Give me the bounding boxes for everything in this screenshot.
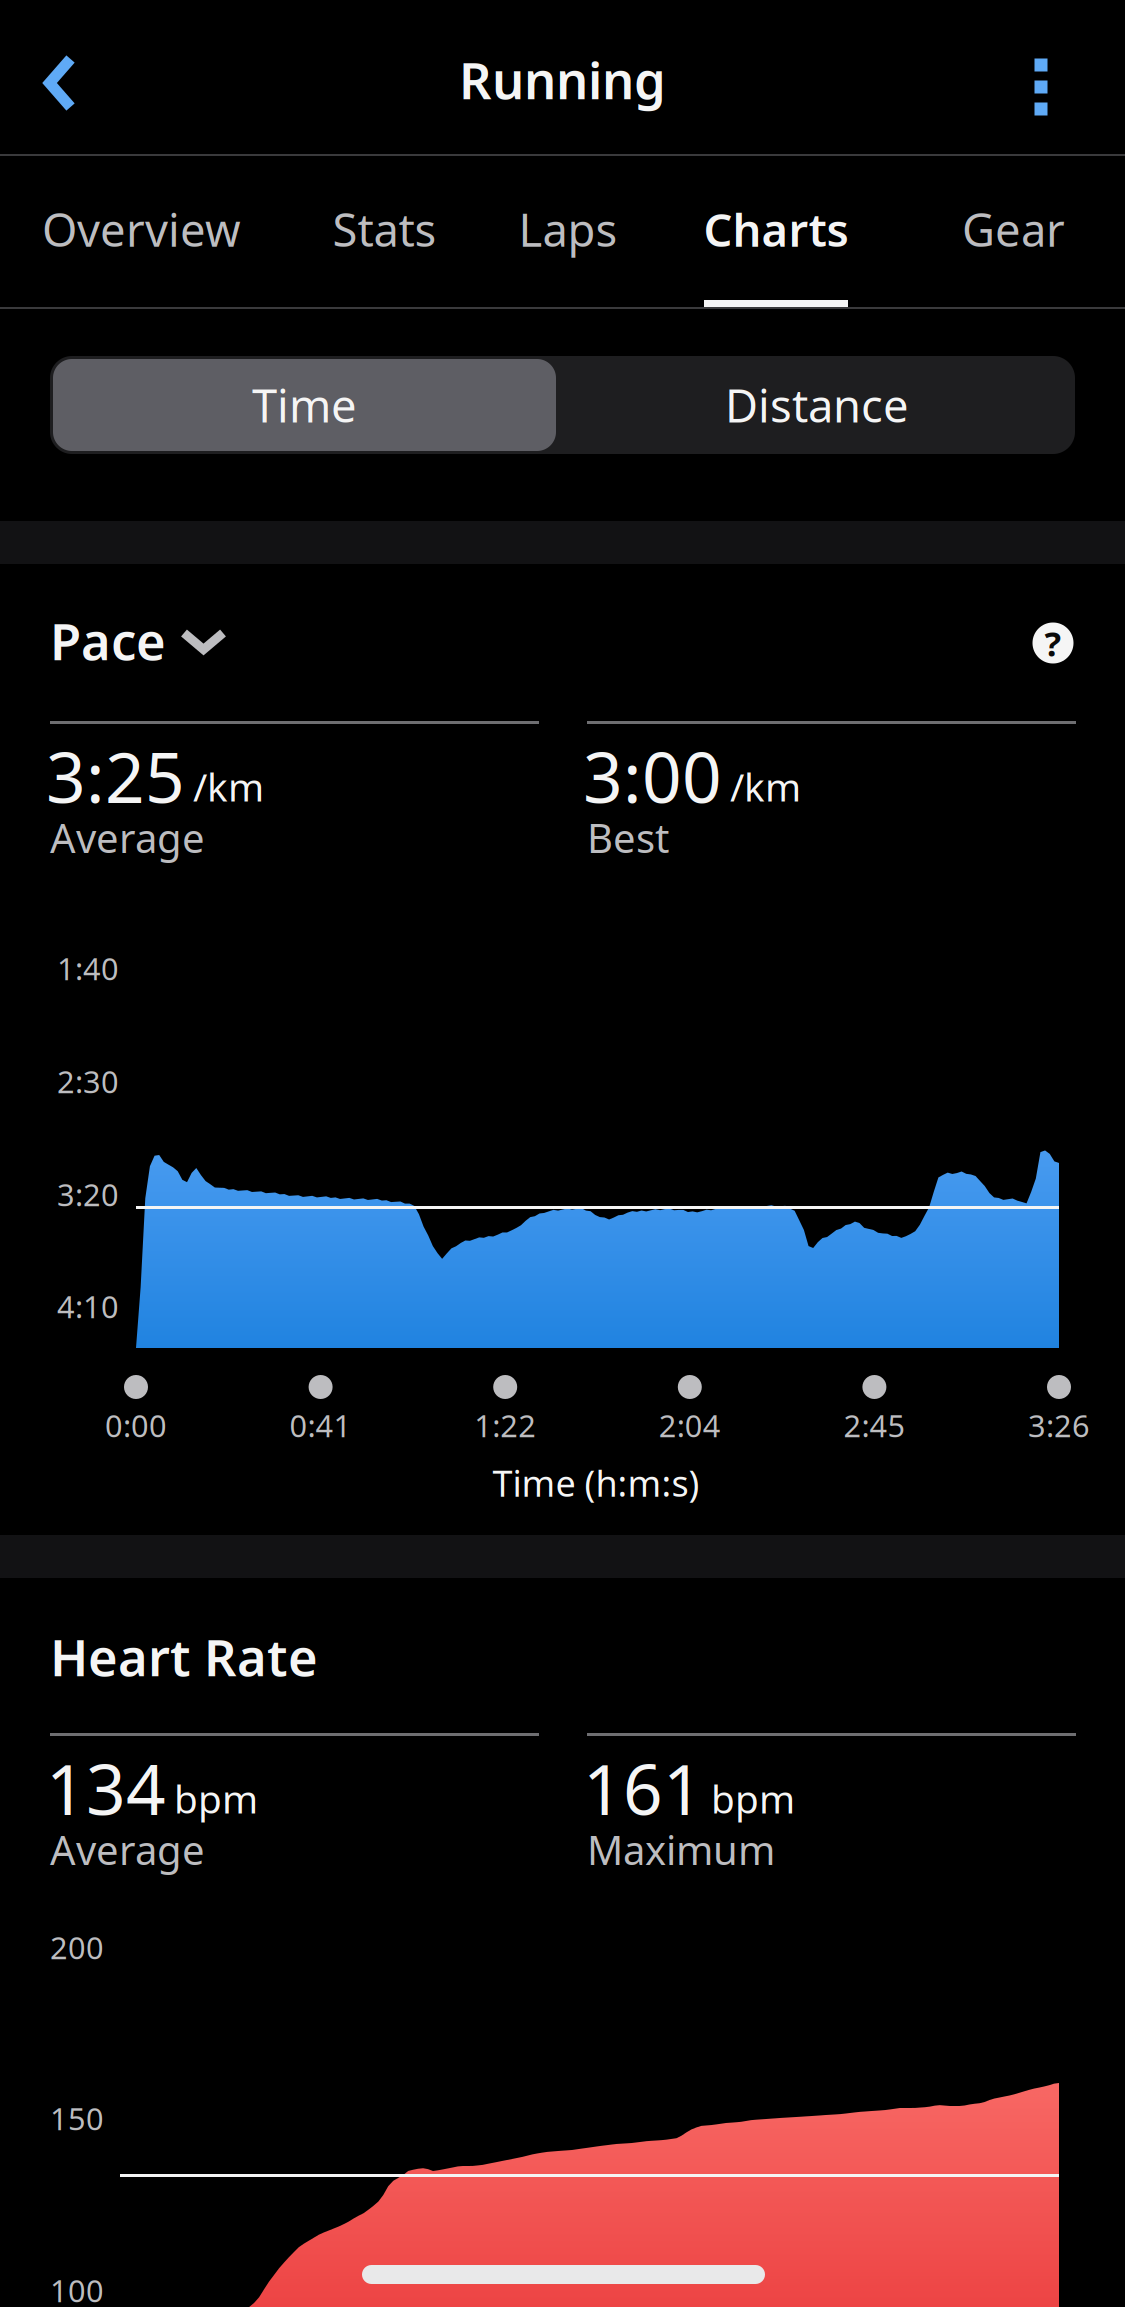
- staticText: 1:22: [474, 1405, 536, 1446]
- staticText: Heart Rate: [50, 1623, 318, 1690]
- staticText: 161: [583, 1742, 703, 1834]
- staticText: bpm: [174, 1773, 258, 1824]
- staticText: Pace: [50, 607, 166, 674]
- staticText: 3:26: [1028, 1405, 1090, 1446]
- staticText: 200: [50, 1927, 104, 1968]
- button[interactable]: Pace: [50, 616, 286, 682]
- staticText: 2:30: [57, 1061, 119, 1102]
- staticText: ?: [1044, 620, 1061, 666]
- staticText: Overview: [42, 199, 241, 259]
- staticText: Laps: [518, 199, 617, 259]
- staticText: Average: [50, 811, 205, 864]
- staticText: 0:41: [290, 1405, 352, 1446]
- staticText: 3:20: [57, 1174, 119, 1215]
- button[interactable]: Overview: [0, 156, 283, 307]
- staticText: Gear: [962, 199, 1065, 259]
- staticText: Running: [459, 46, 666, 113]
- staticText: 134: [46, 1742, 166, 1834]
- staticText: Distance: [725, 375, 909, 435]
- staticText: 1:40: [57, 948, 119, 989]
- staticText: Stats: [332, 199, 436, 259]
- staticText: Charts: [703, 199, 848, 259]
- staticText: 100: [50, 2270, 104, 2307]
- staticText: /km: [193, 761, 264, 812]
- staticText: 3:00: [583, 730, 722, 822]
- staticText: 150: [50, 2098, 104, 2139]
- staticText: /km: [730, 761, 801, 812]
- staticText: Best: [587, 811, 669, 864]
- button[interactable]: Time: [50, 356, 559, 454]
- staticText: 0:00: [105, 1405, 167, 1446]
- staticText: 4:10: [57, 1286, 119, 1327]
- staticText: 3:25: [46, 730, 185, 822]
- staticText: 2:45: [843, 1405, 905, 1446]
- staticText: Time (h:m:s): [492, 1459, 699, 1507]
- button[interactable]: Help: [1022, 612, 1084, 674]
- button[interactable]: Distance: [559, 356, 1075, 454]
- button[interactable]: Laps: [486, 156, 650, 307]
- staticText: Maximum: [587, 1823, 775, 1876]
- staticText: Time: [252, 375, 357, 435]
- staticText: bpm: [711, 1773, 795, 1824]
- button[interactable]: More options: [993, 0, 1125, 154]
- button[interactable]: Charts: [650, 156, 902, 307]
- staticText: Average: [50, 1823, 205, 1876]
- button[interactable]: Gear: [902, 156, 1125, 307]
- button[interactable]: Stats: [283, 156, 486, 307]
- staticText: 2:04: [659, 1405, 721, 1446]
- button[interactable]: Back: [0, 0, 132, 154]
